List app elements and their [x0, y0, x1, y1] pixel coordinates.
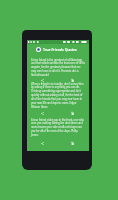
staticText: True Friends Quotes — [43, 47, 77, 52]
button[interactable]: Copy — [70, 111, 74, 115]
button[interactable]: Share — [40, 111, 44, 115]
button[interactable]: When a friend is in trouble, don't annoy… — [31, 82, 85, 108]
button[interactable]: True Friends Quotes — [27, 44, 89, 54]
button[interactable]: A true friend is the greatest of all ble… — [31, 58, 85, 76]
button[interactable]: A true friend stabs you in the front. on… — [31, 118, 85, 136]
button[interactable]: Share — [40, 141, 44, 145]
button[interactable]: Copy — [70, 78, 74, 82]
button[interactable]: Copy — [70, 141, 74, 145]
button[interactable]: Share — [40, 78, 44, 82]
